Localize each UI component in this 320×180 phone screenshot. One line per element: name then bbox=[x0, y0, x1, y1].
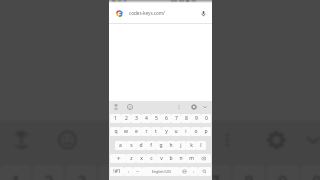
button[interactable]: n bbox=[176, 154, 186, 163]
button[interactable]: z bbox=[126, 154, 136, 163]
staticText: 8 bbox=[244, 169, 254, 180]
button[interactable]: f bbox=[146, 141, 156, 150]
button[interactable]: 0 bbox=[301, 164, 320, 180]
staticText: n bbox=[179, 155, 183, 162]
staticText: z bbox=[130, 155, 133, 162]
staticText: 5 bbox=[143, 169, 153, 180]
button[interactable]: Emoji bbox=[54, 126, 80, 152]
staticText: r bbox=[145, 128, 148, 135]
staticText: o bbox=[194, 128, 198, 135]
button[interactable]: 0 bbox=[201, 114, 211, 123]
staticText: x bbox=[140, 155, 143, 162]
button[interactable] bbox=[196, 154, 211, 163]
button[interactable]: p bbox=[201, 127, 211, 136]
button[interactable]: a bbox=[115, 141, 126, 150]
staticText: 7 bbox=[210, 169, 220, 180]
staticText: y bbox=[165, 128, 168, 135]
staticText: i bbox=[185, 128, 187, 135]
staticText: u bbox=[174, 128, 178, 135]
button[interactable]: q bbox=[110, 127, 121, 136]
button[interactable]: 1 bbox=[110, 114, 121, 123]
staticText: 9 bbox=[278, 169, 288, 180]
button[interactable] bbox=[110, 154, 126, 163]
button[interactable] bbox=[198, 167, 211, 176]
button[interactable]: j bbox=[176, 141, 186, 150]
button[interactable]: 3 bbox=[131, 114, 141, 123]
button[interactable]: w bbox=[121, 127, 131, 136]
staticText: 5 bbox=[155, 115, 158, 122]
button[interactable]: English (US) bbox=[142, 167, 180, 176]
staticText: d bbox=[139, 142, 143, 149]
button[interactable]: !#1 bbox=[110, 167, 124, 176]
staticText: 0 bbox=[312, 169, 320, 180]
button[interactable]: y bbox=[161, 127, 171, 136]
button[interactable]: 5 bbox=[132, 164, 163, 180]
button[interactable]: k bbox=[186, 141, 196, 150]
button[interactable]: Emoji bbox=[126, 103, 134, 111]
button[interactable]: l bbox=[196, 141, 206, 150]
button[interactable]: d bbox=[136, 141, 146, 150]
staticText: 4 bbox=[110, 169, 120, 180]
staticText: h bbox=[169, 142, 173, 149]
button[interactable]: 4 bbox=[141, 114, 151, 123]
button[interactable]: c bbox=[146, 154, 156, 163]
button[interactable]: Keyboard settings bbox=[190, 103, 198, 111]
staticText: !#1 bbox=[113, 168, 121, 175]
button[interactable]: Hide keyboard bbox=[201, 103, 209, 111]
button[interactable]: b bbox=[166, 154, 176, 163]
button[interactable]: Keyboard settings bbox=[263, 126, 289, 152]
staticText: a bbox=[119, 142, 122, 149]
button[interactable]: 7 bbox=[171, 114, 181, 123]
staticText: 1 bbox=[11, 169, 21, 180]
button[interactable]: o bbox=[191, 127, 201, 136]
button[interactable]: 6 bbox=[165, 164, 197, 180]
staticText: g bbox=[159, 142, 163, 149]
staticText: 6 bbox=[176, 169, 186, 180]
button[interactable]: i bbox=[181, 127, 191, 136]
staticText: l bbox=[200, 142, 202, 149]
button[interactable]: Stickers bbox=[112, 103, 120, 111]
button[interactable]: 2 bbox=[121, 114, 131, 123]
button[interactable]: g bbox=[156, 141, 166, 150]
button[interactable]: t bbox=[151, 127, 161, 136]
button[interactable]: h bbox=[166, 141, 176, 150]
button[interactable] bbox=[180, 167, 189, 176]
button[interactable]: e bbox=[131, 127, 141, 136]
staticText: w bbox=[124, 128, 128, 135]
button[interactable]: 6 bbox=[161, 114, 171, 123]
staticText: s bbox=[130, 142, 133, 149]
button[interactable]: More options bbox=[175, 103, 183, 111]
staticText: t bbox=[155, 128, 157, 135]
button[interactable] bbox=[133, 167, 142, 176]
button[interactable] bbox=[189, 167, 198, 176]
button[interactable]: u bbox=[171, 127, 181, 136]
button[interactable]: s bbox=[126, 141, 136, 150]
button[interactable]: 5 bbox=[151, 114, 161, 123]
staticText: q bbox=[114, 128, 118, 135]
button[interactable]: 4 bbox=[99, 164, 130, 180]
button[interactable]: m bbox=[186, 154, 196, 163]
button[interactable]: 8 bbox=[181, 114, 191, 123]
button[interactable]: r bbox=[141, 127, 151, 136]
button[interactable]: 9 bbox=[191, 114, 201, 123]
button[interactable] bbox=[124, 167, 133, 176]
button[interactable]: x bbox=[136, 154, 146, 163]
staticText: b bbox=[169, 155, 173, 162]
button[interactable]: v bbox=[156, 154, 166, 163]
staticText: 2 bbox=[125, 115, 128, 122]
staticText: 7 bbox=[175, 115, 178, 122]
staticText: 1 bbox=[114, 115, 117, 122]
staticText: 6 bbox=[165, 115, 168, 122]
button[interactable]: 7 bbox=[199, 164, 231, 180]
staticText: 0 bbox=[205, 115, 208, 122]
button[interactable]: Stickers bbox=[8, 126, 34, 152]
staticText: 3 bbox=[77, 169, 87, 180]
staticText: English (US) bbox=[152, 169, 171, 174]
